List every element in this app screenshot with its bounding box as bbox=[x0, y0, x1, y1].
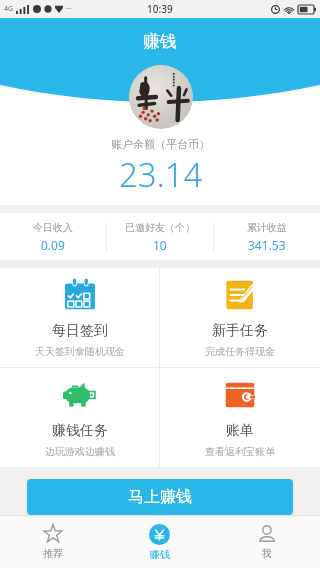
button[interactable]: 累计收益 bbox=[214, 213, 320, 260]
staticText: ··· bbox=[66, 4, 72, 14]
staticText: 完成任务得现金 bbox=[205, 345, 275, 358]
button[interactable]: 推荐 bbox=[0, 516, 106, 568]
staticText: 赚钱 bbox=[143, 31, 177, 52]
staticText: 已邀好友（个） bbox=[125, 221, 195, 234]
staticText: 0.09 bbox=[41, 237, 65, 253]
staticText: 推荐 bbox=[43, 547, 63, 560]
staticText: 马上赚钱 bbox=[128, 487, 192, 507]
staticText: 天天签到拿随机现金 bbox=[35, 345, 125, 358]
staticText: 10 bbox=[153, 237, 167, 253]
staticText: 账户余额（平台币） bbox=[111, 137, 210, 151]
button[interactable]: 马上赚钱 bbox=[27, 479, 293, 515]
staticText: 查看返利宝账单 bbox=[205, 445, 275, 458]
staticText: 赚钱任务 bbox=[52, 422, 108, 440]
staticText: 赚钱 bbox=[150, 548, 170, 561]
staticText: 边玩游戏边赚钱 bbox=[45, 445, 115, 458]
other: 我 bbox=[257, 524, 277, 544]
staticText: 今日收入 bbox=[33, 221, 73, 234]
other: 推荐 bbox=[43, 524, 63, 544]
button[interactable]: 每日签到 bbox=[0, 268, 159, 367]
other: 赚钱 bbox=[149, 524, 170, 545]
button[interactable]: 账单 bbox=[160, 368, 320, 467]
button[interactable]: 今日收入 bbox=[0, 213, 106, 260]
staticText: 每日签到 bbox=[52, 322, 108, 340]
staticText: 10:39 bbox=[147, 2, 173, 16]
button[interactable]: 赚钱 bbox=[106, 516, 213, 568]
staticText: 账单 bbox=[226, 422, 254, 440]
button[interactable]: 已邀好友（个） bbox=[107, 213, 213, 260]
staticText: 341.53 bbox=[248, 237, 286, 253]
button[interactable]: 新手任务 bbox=[160, 268, 320, 367]
staticText: 我 bbox=[262, 547, 272, 560]
staticText: 新手任务 bbox=[212, 322, 268, 340]
button[interactable]: 赚钱任务 bbox=[0, 368, 159, 467]
staticText: 累计收益 bbox=[247, 221, 287, 234]
staticText: 4G bbox=[4, 4, 14, 14]
button[interactable]: 我 bbox=[213, 516, 320, 568]
staticText: 23.14 bbox=[119, 152, 203, 197]
